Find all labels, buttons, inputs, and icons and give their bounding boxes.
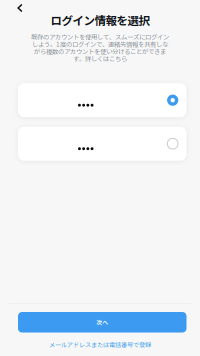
staticText: メールアドレスまたは電話番号で登録 — [49, 340, 151, 349]
button[interactable]: 次へ — [18, 312, 186, 332]
staticText: 既存のアカウントを使用して、スムーズにログイン — [31, 32, 169, 41]
button[interactable]: メールアドレスまたは電話番号で登録 — [49, 341, 151, 348]
staticText: 次へ — [96, 318, 108, 326]
staticText: がら複数のアカウントを使い分けることができま — [34, 47, 166, 56]
button[interactable]: Account — [18, 127, 186, 161]
staticText: しよう。1度のログインで、連絡先情報を共有しな — [32, 39, 168, 49]
button[interactable]: Back — [12, 0, 28, 16]
button[interactable]: Selected account — [18, 83, 186, 117]
staticText: ログイン情報を選択 — [50, 12, 149, 28]
staticText: す。詳しくはこちら — [73, 54, 127, 63]
